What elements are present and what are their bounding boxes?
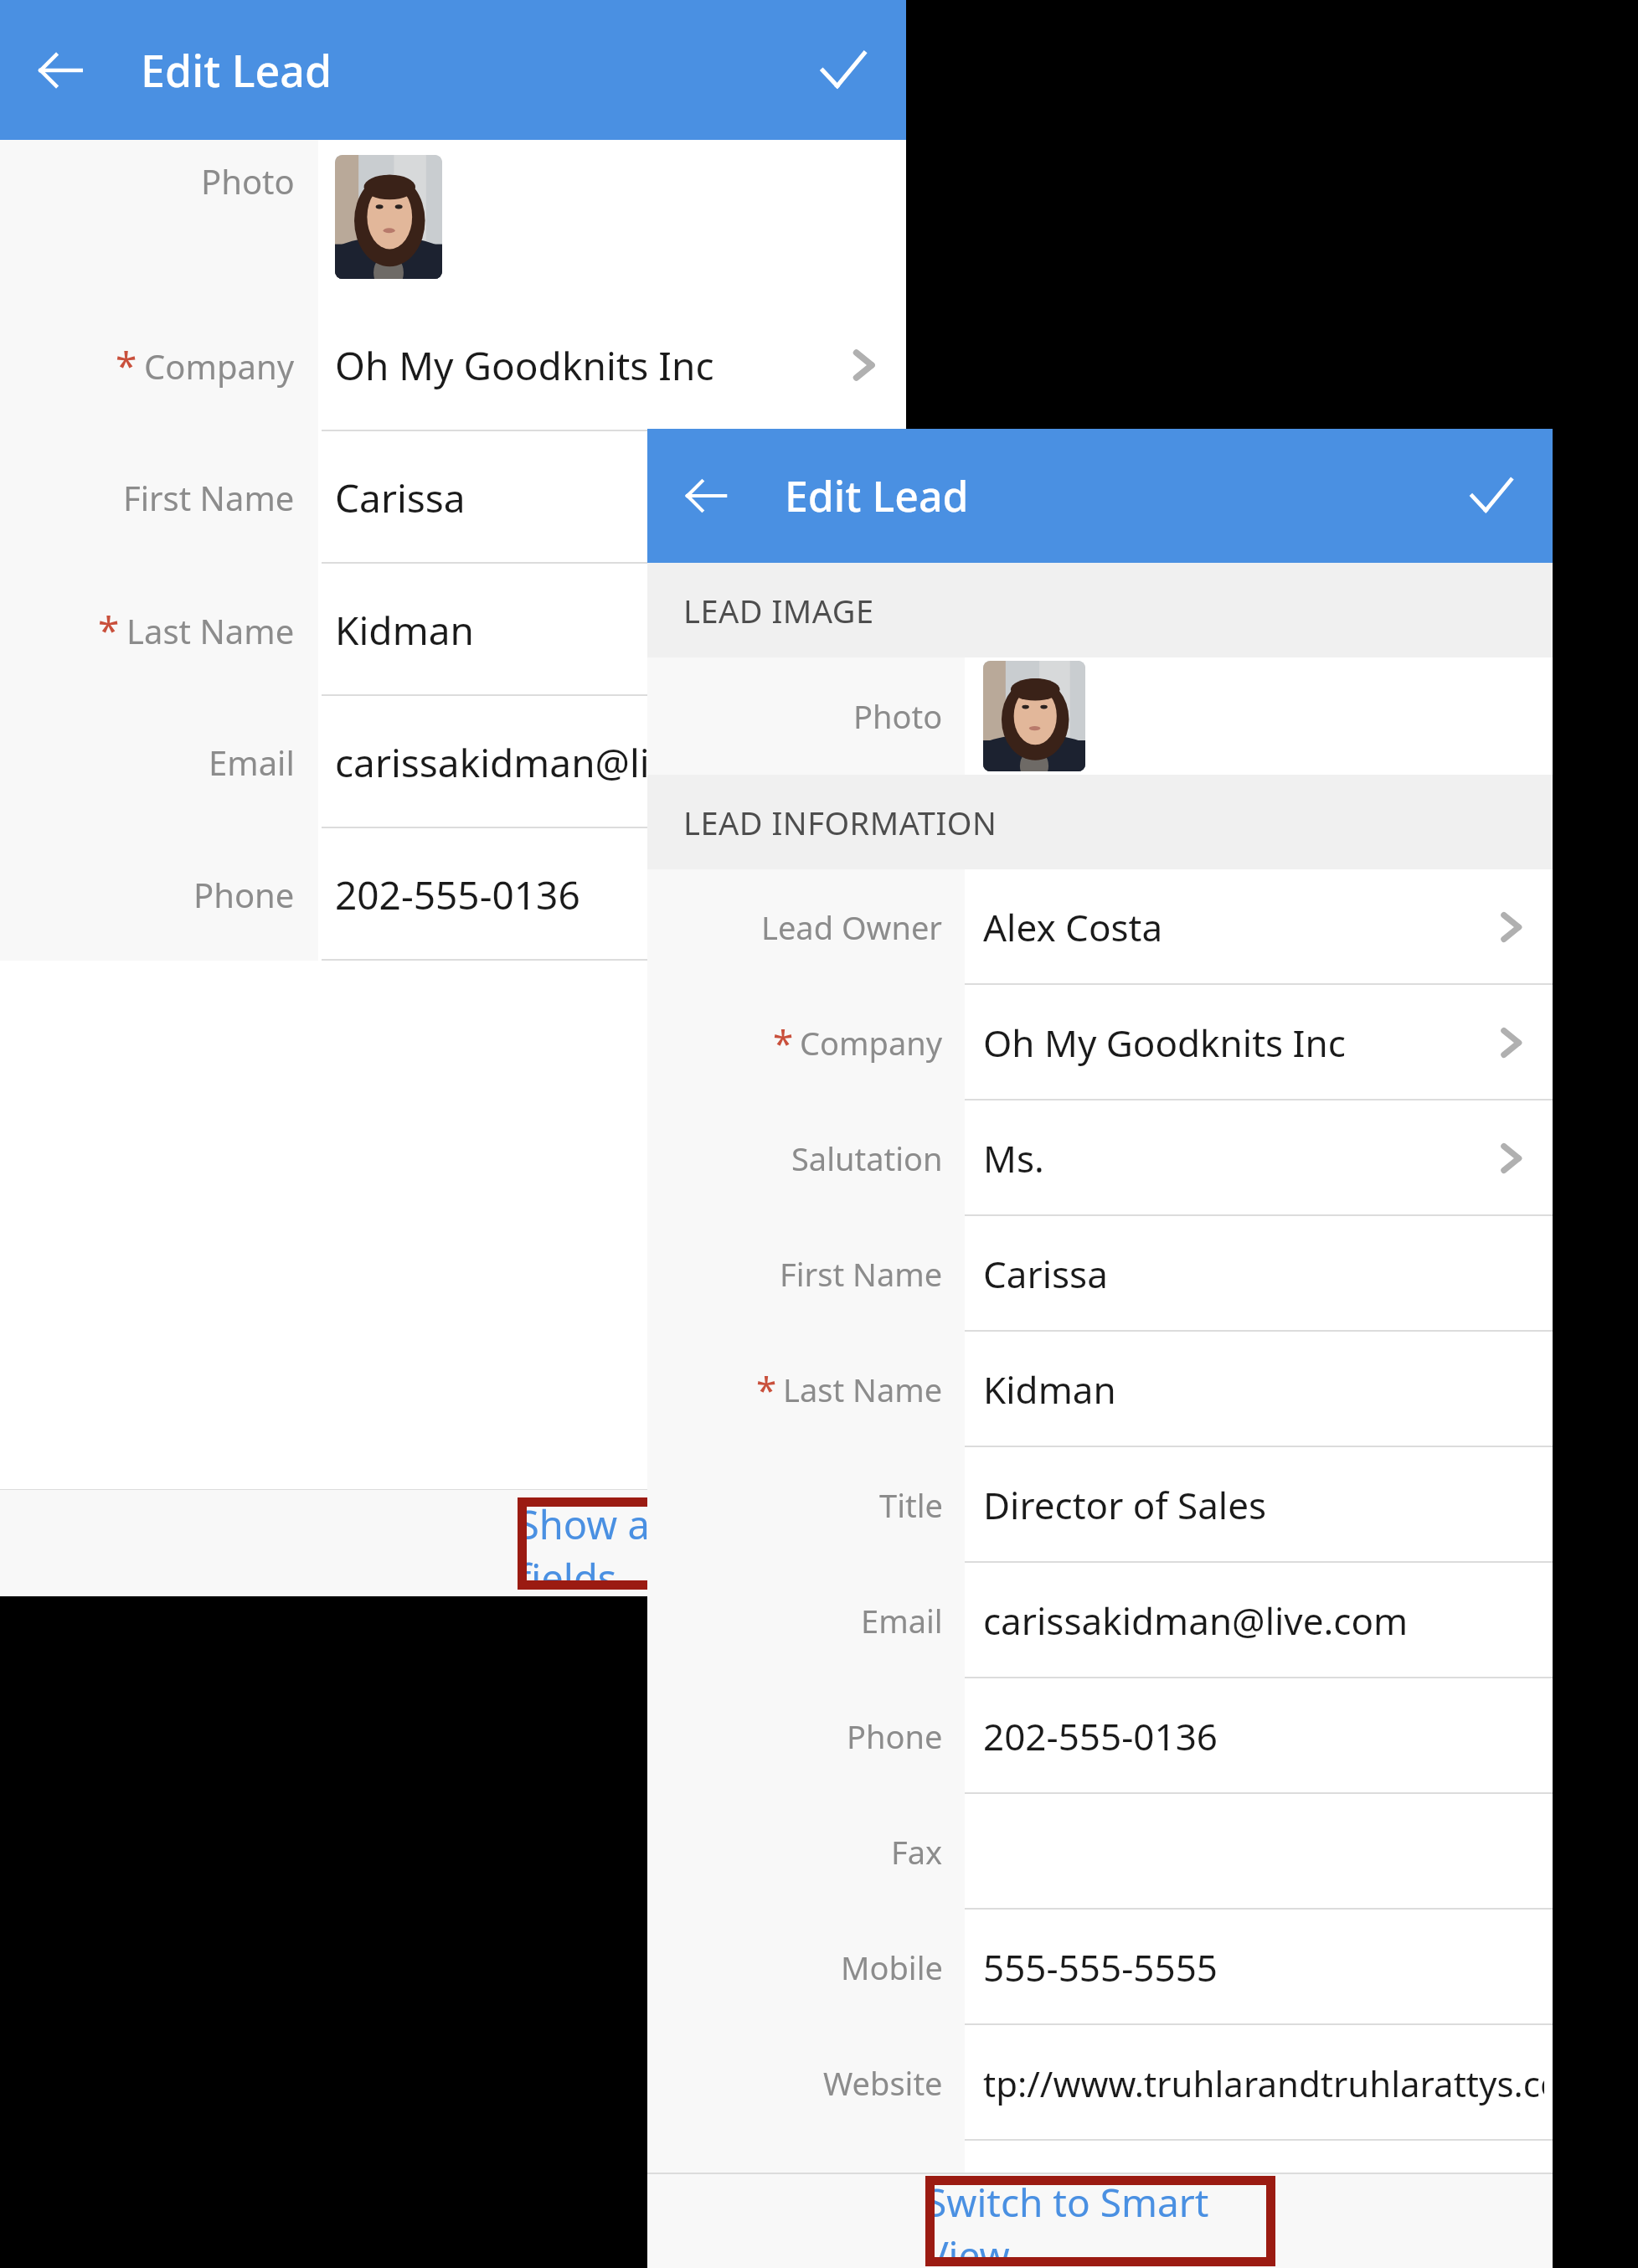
staticText: Last Name bbox=[126, 608, 295, 653]
staticText: Mobile bbox=[841, 1946, 943, 1989]
button[interactable]: Phone bbox=[0, 828, 906, 961]
staticText: Email bbox=[861, 1599, 943, 1642]
staticText: Alex Costa bbox=[983, 902, 1163, 952]
button[interactable]: * bbox=[0, 564, 906, 696]
button[interactable]: Lead Owner bbox=[647, 869, 1553, 985]
staticText: Switch to Smart View bbox=[925, 2176, 1275, 2266]
staticText: Company bbox=[144, 343, 295, 389]
staticText: Carissa bbox=[983, 1249, 1108, 1299]
staticText: Lead Owner bbox=[761, 905, 943, 949]
button[interactable]: * bbox=[647, 1332, 1553, 1447]
staticText: Edit Lead bbox=[785, 467, 969, 524]
staticText: Photo bbox=[201, 158, 295, 204]
staticText: Title bbox=[879, 1483, 943, 1527]
staticText: Photo bbox=[853, 694, 943, 738]
staticText: Email bbox=[209, 740, 295, 785]
staticText: Phone bbox=[847, 1714, 943, 1758]
button[interactable]: Switch to Smart View bbox=[925, 2176, 1275, 2266]
staticText: First Name bbox=[123, 475, 295, 520]
staticText: Company bbox=[800, 1021, 943, 1064]
staticText: Ms. bbox=[983, 1133, 1044, 1183]
staticText: Website bbox=[823, 2061, 943, 2105]
button[interactable]: Save bbox=[1455, 461, 1526, 531]
button[interactable]: Show all fields bbox=[518, 1497, 707, 1590]
button[interactable]: Email bbox=[647, 1563, 1553, 1678]
button[interactable]: Back bbox=[671, 461, 741, 531]
button[interactable]: * bbox=[0, 299, 906, 431]
staticText: Oh My Goodknits Inc bbox=[983, 1018, 1346, 1068]
staticText: tp://www.truhlarandtruhlarattys.com bbox=[983, 2059, 1544, 2107]
staticText: Fax bbox=[891, 1830, 943, 1874]
staticText: * bbox=[756, 1364, 777, 1415]
staticText: * bbox=[773, 1018, 794, 1068]
button[interactable]: Back bbox=[23, 34, 97, 107]
button[interactable]: Email bbox=[0, 696, 906, 828]
staticText: LEAD INFORMATION bbox=[683, 801, 997, 844]
staticText: 555-555-5555 bbox=[983, 1942, 1218, 1992]
staticText: Kidman bbox=[335, 604, 474, 657]
staticText: Kidman bbox=[983, 1364, 1116, 1415]
staticText: Phone bbox=[193, 872, 295, 917]
staticText: Edit Lead bbox=[141, 40, 332, 100]
staticText: carissakidman@live.com bbox=[983, 1595, 1409, 1646]
button[interactable]: Save bbox=[806, 34, 879, 107]
button[interactable]: First Name bbox=[0, 431, 906, 564]
staticText: Oh My Goodknits Inc bbox=[335, 339, 714, 392]
staticText: * bbox=[116, 339, 137, 392]
staticText: Salutation bbox=[791, 1137, 943, 1180]
staticText: 202-555-0136 bbox=[983, 1711, 1218, 1761]
button[interactable]: First Name bbox=[647, 1216, 1553, 1332]
staticText: LEAD IMAGE bbox=[683, 589, 874, 632]
staticText: Last Name bbox=[783, 1368, 943, 1411]
staticText: Director of Sales bbox=[983, 1480, 1267, 1530]
button[interactable]: Fax bbox=[647, 1794, 1553, 1910]
staticText: 202-555-0136 bbox=[335, 869, 580, 921]
button[interactable]: * bbox=[647, 985, 1553, 1100]
staticText: carissakidman@live.c bbox=[335, 736, 720, 789]
staticText: Carissa bbox=[335, 472, 466, 524]
button[interactable]: Salutation bbox=[647, 1100, 1553, 1216]
button[interactable]: Website bbox=[647, 2025, 1553, 2141]
staticText: * bbox=[98, 604, 120, 657]
button[interactable]: Phone bbox=[647, 1678, 1553, 1794]
staticText: First Name bbox=[780, 1252, 943, 1296]
button[interactable]: Mobile bbox=[647, 1910, 1553, 2025]
staticText: Show all fields bbox=[518, 1497, 707, 1590]
button[interactable]: Title bbox=[647, 1447, 1553, 1563]
